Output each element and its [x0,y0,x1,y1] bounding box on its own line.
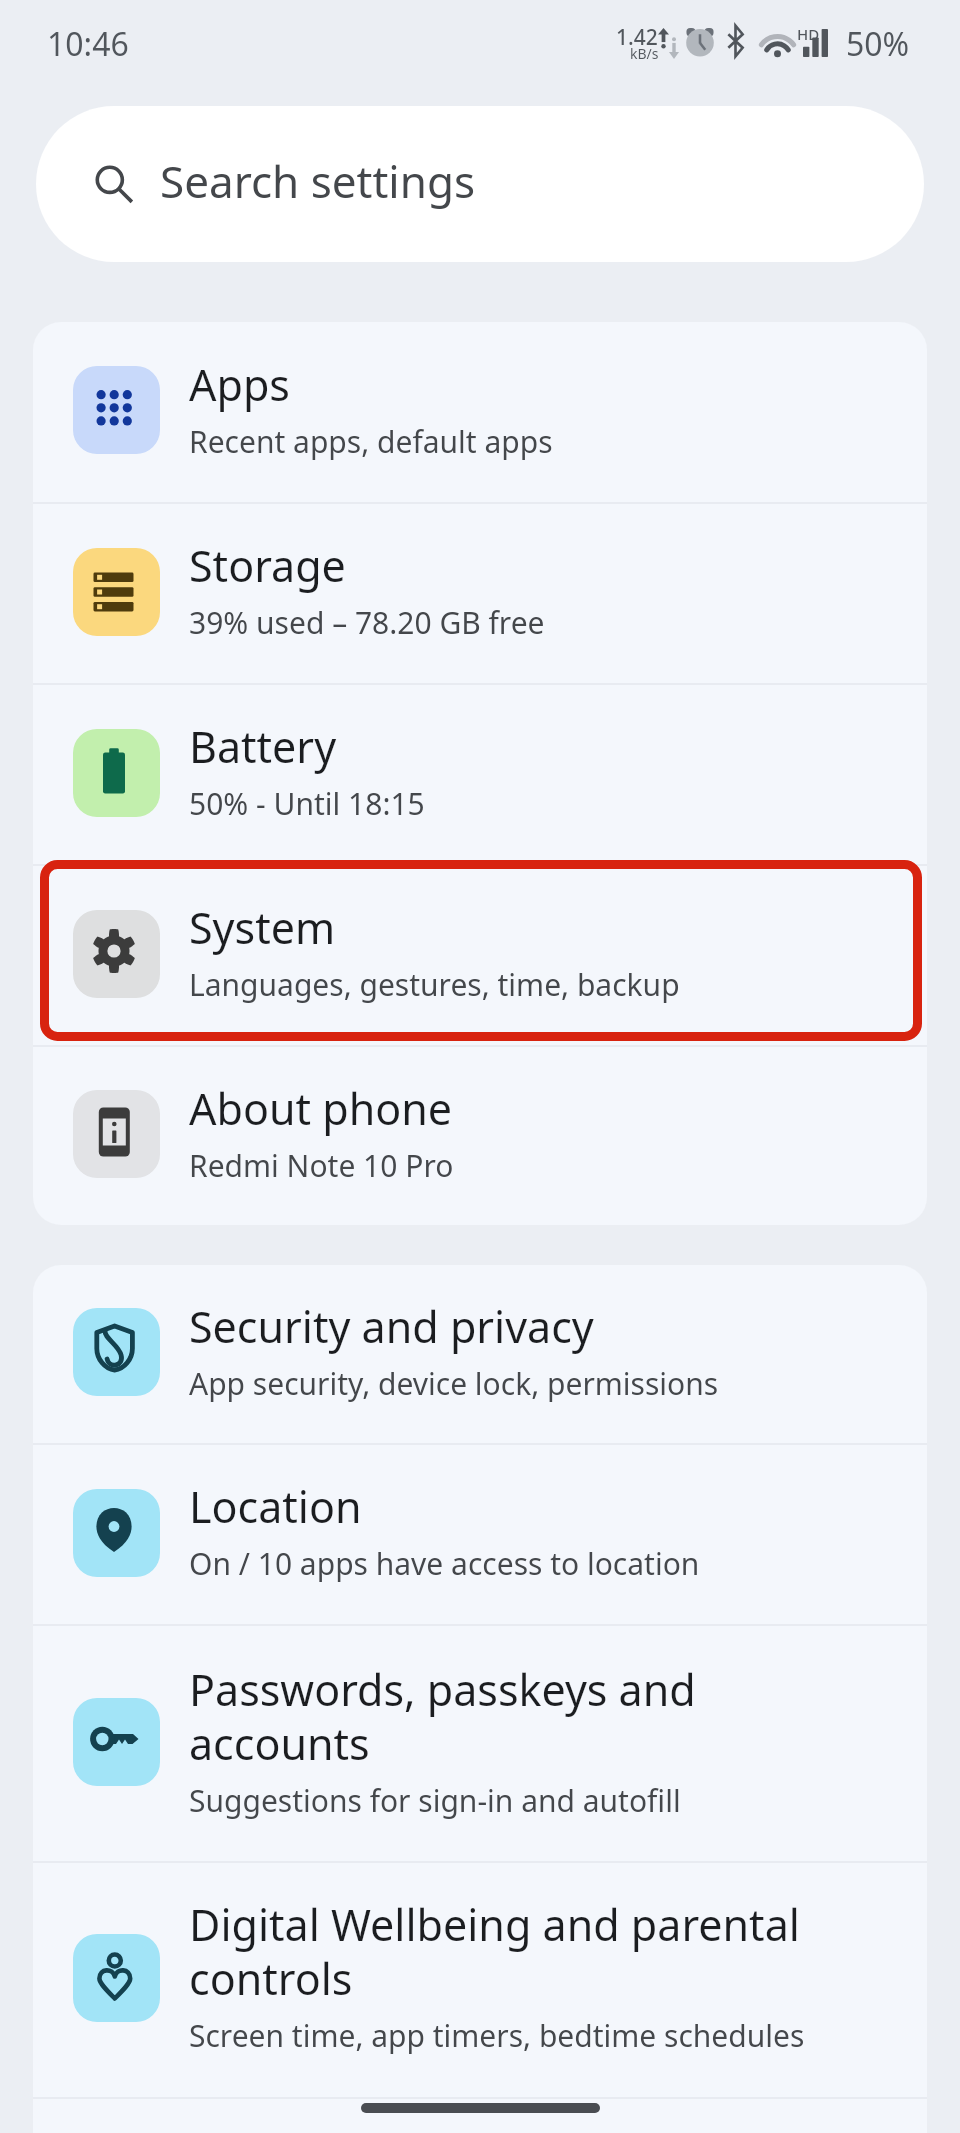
staticText: Passwords, passkeys and accounts [189,1660,811,1773]
staticText: HD [797,24,820,44]
other: Alarm set [685,26,715,56]
button[interactable]: Digital Wellbeing and parental controls [33,1863,927,2097]
staticText: Storage [189,536,346,595]
staticText: System [189,898,336,957]
button[interactable]: Battery [33,685,927,864]
button[interactable]: Search settings [36,106,924,262]
other: Bluetooth on [727,25,744,57]
staticText: Digital Wellbeing and parental controls [189,1895,811,2008]
staticText: 50% - Until 18:15 [189,783,425,824]
button[interactable]: Passwords, passkeys and accounts [33,1626,927,1861]
button[interactable]: Storage [33,504,927,683]
staticText: 50% [846,22,910,66]
staticText: Search settings [160,151,476,211]
button[interactable]: Apps [33,322,927,502]
staticText: Languages, gestures, time, backup [189,964,680,1005]
staticText: Screen time, app timers, bedtime schedul… [189,2015,805,2056]
other: Mobile signal [803,29,828,57]
other: Wi-Fi [761,29,794,56]
staticText: 39% used – 78.20 GB free [189,602,545,643]
staticText: About phone [189,1079,453,1138]
staticText: Location [189,1477,362,1536]
staticText: Redmi Note 10 Pro [189,1145,454,1186]
staticText: kB/s [630,44,659,63]
staticText: Apps [189,355,290,414]
staticText: Recent apps, default apps [189,421,553,462]
button[interactable] [33,2099,927,2133]
button[interactable]: Location [33,1445,927,1624]
staticText: Security and privacy [189,1297,594,1356]
staticText: Suggestions for sign-in and autofill [189,1780,681,1821]
staticText: On / 10 apps have access to location [189,1543,700,1584]
button[interactable]: Security and privacy [33,1265,927,1443]
staticText: 10:46 [47,22,129,66]
staticText: 1.42 [616,23,658,52]
button[interactable]: System [33,866,927,1045]
staticText: Battery [189,717,337,776]
button[interactable]: About phone [33,1047,927,1225]
staticText: App security, device lock, permissions [189,1363,719,1404]
